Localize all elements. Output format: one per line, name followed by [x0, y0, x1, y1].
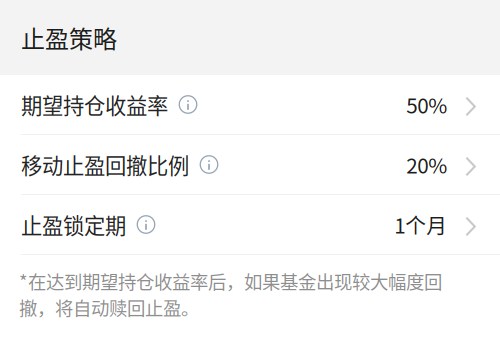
staticText: 50% [406, 89, 447, 119]
button[interactable]: 移动止盈回撤比例 [0, 135, 500, 194]
button[interactable]: 止盈锁定期 [0, 195, 500, 254]
staticText: 期望持仓收益率 [21, 89, 168, 120]
button[interactable]: 期望持仓收益率 [0, 75, 500, 134]
staticText: 止盈锁定期 [21, 209, 126, 240]
staticText: 止盈策略 [21, 20, 117, 55]
staticText: 移动止盈回撤比例 [21, 149, 189, 180]
staticText: 20% [406, 149, 447, 179]
staticText: 1个月 [394, 209, 447, 239]
staticText: *在达到期望持仓收益率后，如果基金出现较大幅度回撤，将自动赎回止盈。 [19, 268, 442, 320]
